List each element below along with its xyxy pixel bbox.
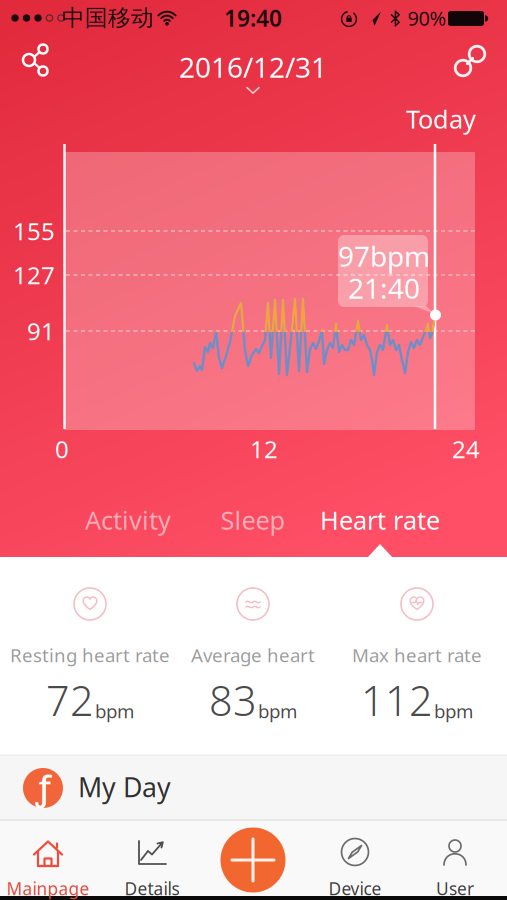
staticText: Max heart rate xyxy=(352,643,482,667)
staticText: 127 xyxy=(13,259,55,291)
staticText: 97bpm xyxy=(338,237,430,275)
staticText: Details xyxy=(124,877,179,900)
staticText: 112 xyxy=(361,673,433,727)
staticText: 0 xyxy=(55,433,69,465)
staticText: Today xyxy=(406,102,476,136)
staticText: Resting heart rate xyxy=(10,643,170,667)
staticText: bpm xyxy=(95,699,134,723)
staticText: 2016/12/31 xyxy=(179,48,327,86)
staticText: Heart rate xyxy=(320,503,440,537)
staticText: Average heart xyxy=(191,643,315,667)
staticText: Sleep xyxy=(220,503,285,537)
staticText: ƒ xyxy=(35,764,50,810)
button[interactable]: Device xyxy=(311,820,399,896)
staticText: Activity xyxy=(85,503,171,537)
button[interactable]: Link xyxy=(452,43,487,78)
staticText: 12 xyxy=(250,433,278,465)
staticText: Device xyxy=(328,877,381,900)
staticText: 90% xyxy=(407,5,446,31)
button[interactable]: ƒ xyxy=(0,755,507,820)
button[interactable]: Mainpage xyxy=(0,820,96,896)
staticText: bpm xyxy=(434,699,473,723)
button[interactable]: Share xyxy=(12,36,60,84)
staticText: 72 xyxy=(46,673,94,727)
button[interactable]: Choose date xyxy=(179,48,327,94)
staticText: bpm xyxy=(258,699,297,723)
staticText: 中国移动 xyxy=(62,4,154,32)
staticText: 83 xyxy=(209,673,257,727)
button[interactable]: Heart rate xyxy=(315,500,445,540)
staticText: User xyxy=(436,877,474,900)
staticText: 19:40 xyxy=(224,3,282,33)
staticText: 21:40 xyxy=(348,269,420,307)
staticText: Mainpage xyxy=(6,877,89,900)
button[interactable]: User xyxy=(415,820,495,896)
staticText: My Day xyxy=(78,769,171,805)
staticText: 24 xyxy=(452,433,480,465)
staticText: 91 xyxy=(27,315,55,347)
staticText: 155 xyxy=(13,215,55,247)
button[interactable]: Activity xyxy=(68,500,188,540)
button[interactable]: Details xyxy=(108,820,196,896)
button[interactable]: Add xyxy=(220,827,285,892)
button[interactable]: Sleep xyxy=(203,500,303,540)
